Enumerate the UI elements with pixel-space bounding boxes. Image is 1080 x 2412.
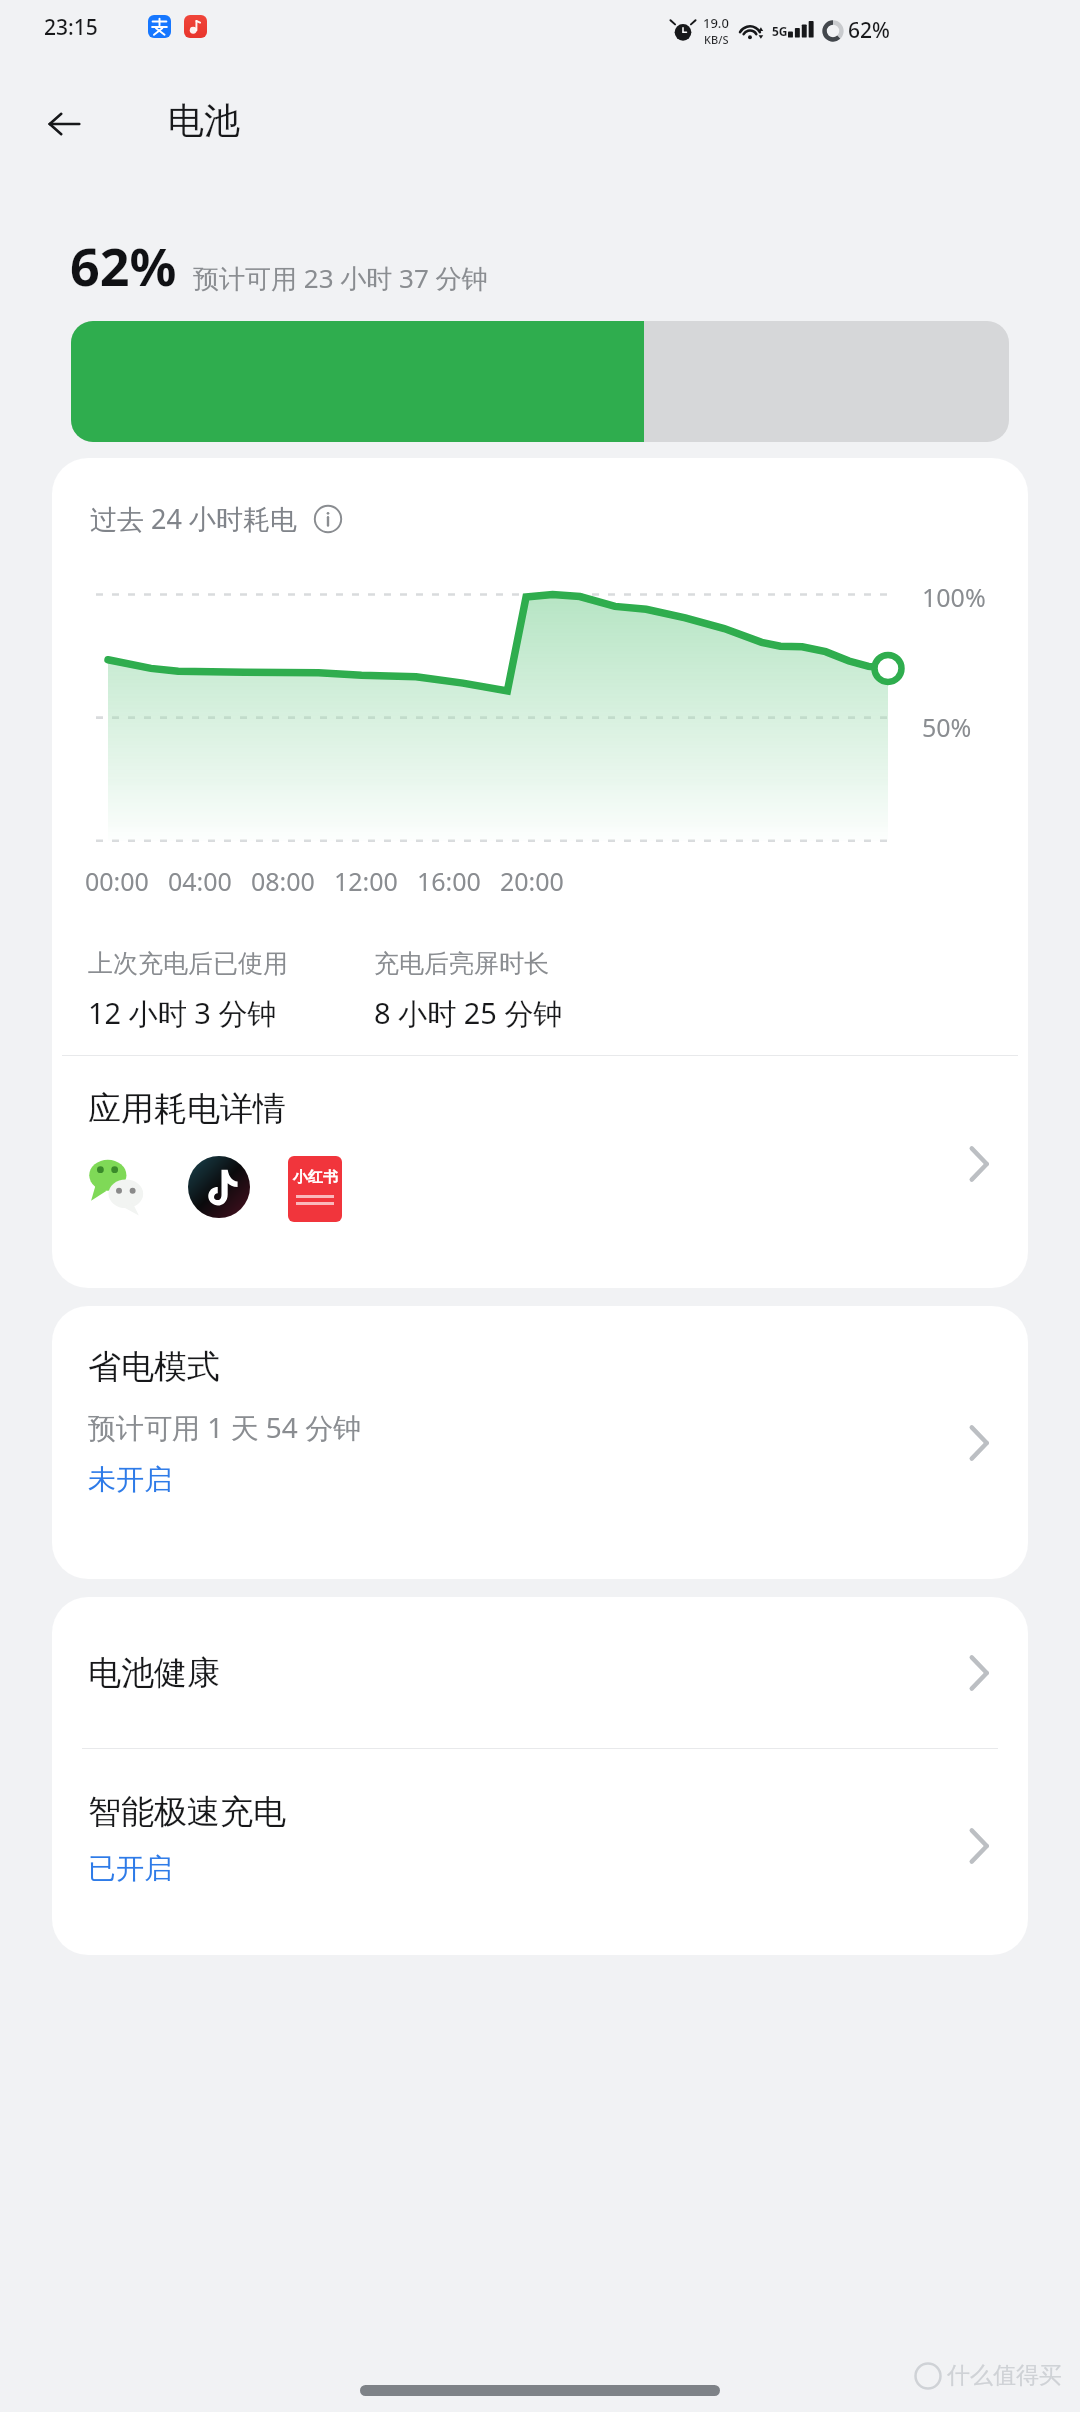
- staticText: 未开启: [88, 1462, 172, 1497]
- staticText: 16:00: [417, 864, 481, 898]
- staticText: 应用耗电详情: [88, 1088, 286, 1130]
- staticText: KB/S: [704, 32, 729, 47]
- staticText: 过去 24 小时耗电: [90, 500, 297, 537]
- staticText: 已开启: [88, 1851, 172, 1886]
- staticText: 智能极速充电: [88, 1791, 286, 1833]
- staticText: 8 小时 25 分钟: [374, 993, 563, 1033]
- staticText: 什么值得买: [947, 2361, 1062, 2390]
- staticText: 预计可用 1 天 54 分钟: [88, 1408, 362, 1446]
- staticText: 62%: [848, 16, 890, 45]
- staticText: 预计可用 23 小时 37 分钟: [193, 260, 488, 296]
- staticText: 省电模式: [88, 1346, 220, 1388]
- button[interactable]: 应用耗电详情: [52, 1056, 1028, 1288]
- staticText: 小红书: [293, 1168, 338, 1187]
- staticText: 充电后亮屏时长: [374, 948, 549, 979]
- staticText: 20:00: [500, 864, 564, 898]
- staticText: 08:00: [251, 864, 315, 898]
- staticText: 62%: [70, 230, 177, 301]
- staticText: 23:15: [44, 13, 98, 42]
- button[interactable]: 智能极速充电: [52, 1749, 1028, 1955]
- staticText: 100%: [922, 580, 986, 614]
- button[interactable]: 电池健康: [52, 1597, 1028, 1748]
- staticText: 上次充电后已使用: [88, 948, 288, 979]
- staticText: 电池健康: [88, 1652, 220, 1694]
- staticText: 12:00: [334, 864, 398, 898]
- button[interactable]: 省电模式: [52, 1306, 1028, 1579]
- staticText: 电池: [168, 98, 240, 143]
- staticText: 04:00: [168, 864, 232, 898]
- button[interactable]: Back: [30, 90, 98, 158]
- staticText: 12 小时 3 分钟: [88, 993, 277, 1033]
- staticText: 19.0: [703, 14, 729, 32]
- staticText: 00:00: [85, 864, 149, 898]
- button[interactable]: Info: [311, 502, 345, 536]
- staticText: 5G: [772, 23, 788, 39]
- staticText: 50%: [922, 710, 972, 744]
